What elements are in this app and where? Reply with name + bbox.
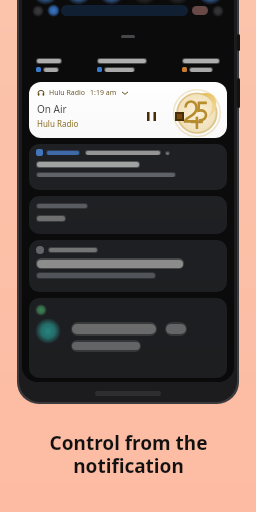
button[interactable]: Stop [171, 108, 187, 124]
button[interactable] [29, 240, 227, 292]
staticText: Hulu Radio [49, 88, 86, 98]
staticText: Control from the notification [49, 430, 208, 479]
button[interactable] [29, 298, 227, 378]
staticText: 1:19 am [90, 88, 117, 98]
staticText: Hulu Radio [37, 118, 79, 129]
button[interactable]: Expand notification [121, 89, 129, 97]
button[interactable]: Pause [143, 108, 159, 124]
button[interactable] [29, 196, 227, 234]
button[interactable]: Hulu Radio [29, 82, 227, 138]
button[interactable] [29, 144, 227, 190]
staticText: On Air [37, 102, 67, 116]
